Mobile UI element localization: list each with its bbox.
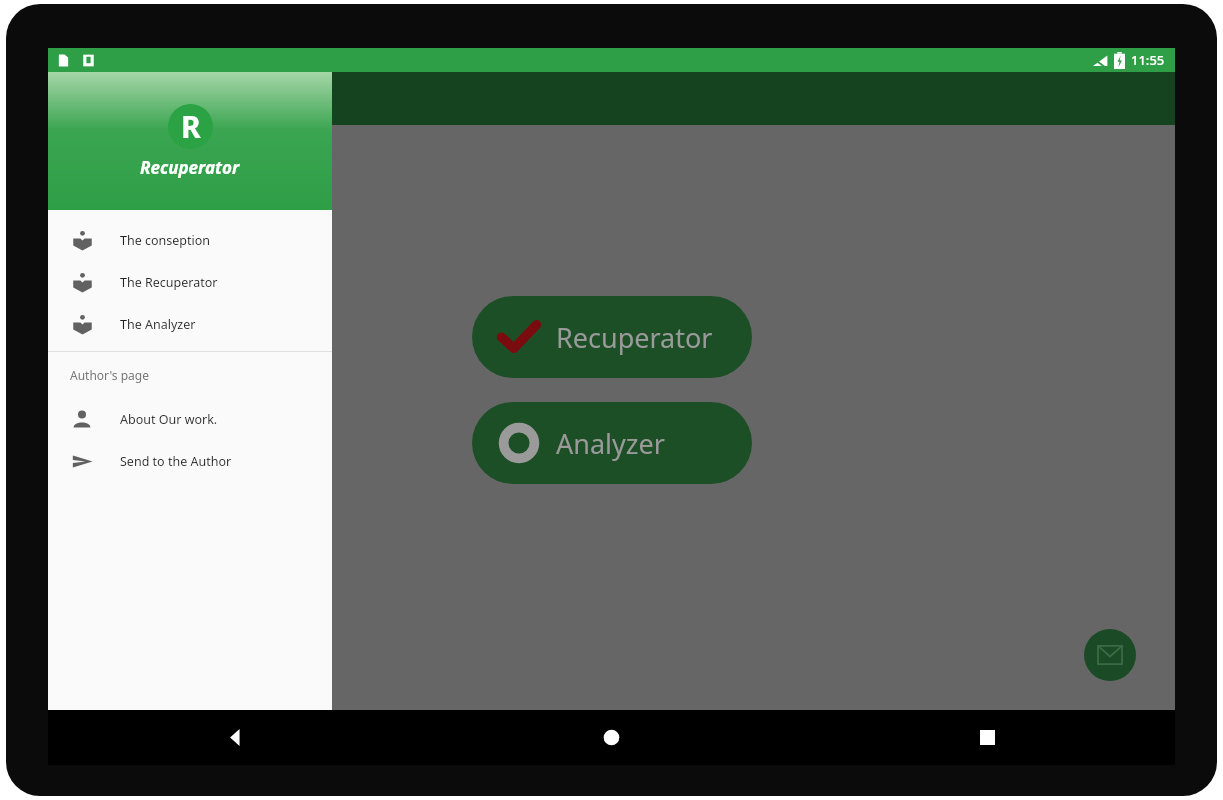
staticText: The conseption xyxy=(120,232,211,249)
staticText: The Recuperator xyxy=(120,274,218,291)
staticText: Author's page xyxy=(70,367,149,383)
staticText: Send to the Author xyxy=(120,453,232,470)
staticText: The Analyzer xyxy=(120,316,196,333)
button[interactable]: About Our work. xyxy=(48,398,332,440)
staticText: Recuperator xyxy=(556,319,713,356)
staticText: R xyxy=(181,106,201,147)
staticText: 11:55 xyxy=(1131,51,1165,69)
button[interactable]: Recent apps xyxy=(799,710,1175,765)
button[interactable]: Send mail to the author xyxy=(1084,629,1136,681)
button[interactable]: Recuperator xyxy=(472,296,752,378)
button[interactable]: The Recuperator xyxy=(48,261,332,303)
staticText: Recuperator xyxy=(140,156,240,179)
button[interactable]: The conseption xyxy=(48,219,332,261)
staticText: Analyzer xyxy=(556,425,665,462)
button[interactable]: Analyzer xyxy=(472,402,752,484)
button[interactable]: The Analyzer xyxy=(48,303,332,345)
button[interactable]: Home xyxy=(423,710,799,765)
button[interactable]: Send to the Author xyxy=(48,440,332,482)
staticText: About Our work. xyxy=(120,411,218,428)
button[interactable]: Back xyxy=(48,710,423,765)
